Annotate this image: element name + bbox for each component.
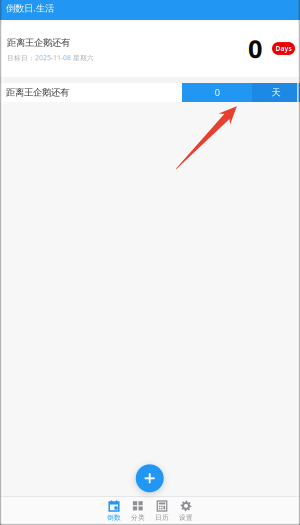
staticText: 天 [271, 87, 280, 98]
staticText: 0 [248, 32, 262, 65]
staticText: 倒数 [107, 513, 121, 522]
button[interactable]: 倒数 [102, 497, 126, 525]
button[interactable]: 日历 [150, 497, 174, 525]
button[interactable]: 距离王企鹅还有 [0, 20, 300, 77]
staticText: 日历 [155, 513, 169, 522]
staticText: 设置 [179, 513, 193, 522]
staticText: Days [275, 44, 291, 53]
staticText: 目标日：2025-11-08 星期六 [7, 53, 94, 62]
staticText: 距离王企鹅还有 [7, 37, 70, 48]
staticText: 0 [214, 86, 219, 99]
button[interactable]: 距离王企鹅还有 [0, 83, 300, 102]
button[interactable]: 分类 [126, 497, 150, 525]
staticText: 分类 [131, 513, 145, 522]
staticText: 倒数日.生活 [6, 2, 54, 14]
staticText: 距离王企鹅还有 [6, 87, 69, 98]
button[interactable]: 设置 [174, 497, 198, 525]
button[interactable]: Add [136, 464, 164, 492]
